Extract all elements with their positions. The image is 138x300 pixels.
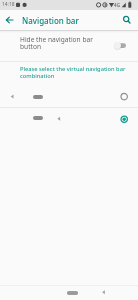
button[interactable] (108, 39, 132, 55)
button[interactable] (2, 13, 16, 27)
staticText: Hide the navigation bar button (20, 35, 93, 51)
button[interactable] (0, 108, 138, 130)
button[interactable]: Hide the navigation bar button (0, 33, 138, 61)
staticText: Navigation bar (22, 15, 79, 26)
button[interactable] (61, 286, 83, 299)
button[interactable] (119, 12, 135, 28)
button[interactable] (119, 12, 135, 28)
staticText: 14:18 (2, 1, 15, 8)
staticText: Please select the virtual navigation bar… (20, 65, 126, 80)
button[interactable] (96, 286, 111, 299)
staticText: 4G (114, 2, 120, 8)
button[interactable] (0, 84, 138, 107)
